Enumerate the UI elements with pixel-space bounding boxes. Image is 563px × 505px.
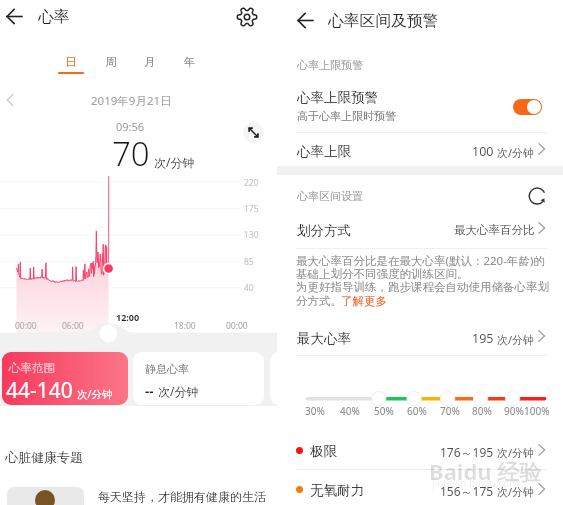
staticText: 195 — [472, 330, 494, 347]
button[interactable]: 最大心率 — [277, 325, 563, 353]
staticText: 周 — [105, 55, 117, 69]
staticText: 次/分钟 — [154, 154, 195, 170]
staticText: 130 — [244, 229, 259, 241]
button[interactable]: Reset heart rate zones — [528, 187, 547, 206]
staticText: 60% — [407, 404, 427, 418]
staticText: 100 — [472, 143, 494, 160]
staticText: 06:00 — [62, 320, 84, 332]
staticText: 30% — [305, 404, 325, 418]
button[interactable]: Expand chart — [243, 122, 264, 143]
staticText: 次/分钟 — [497, 484, 535, 499]
button[interactable]: 心率范围 — [2, 352, 128, 405]
staticText: 次/分钟 — [497, 332, 535, 347]
staticText: 50% — [374, 404, 394, 418]
staticText: 44-140 — [6, 376, 73, 405]
staticText: 心率上限 — [297, 143, 351, 160]
staticText: 18:00 — [174, 320, 196, 332]
staticText: 次/分钟 — [158, 383, 199, 399]
staticText: 90% — [504, 404, 524, 418]
staticText: 无氧耐力 — [310, 482, 364, 499]
staticText: 分方式。 — [296, 294, 342, 308]
staticText: 次/分钟 — [497, 145, 535, 160]
staticText: 心率上限预警 — [297, 58, 363, 72]
button[interactable]: 了解更多 — [341, 294, 387, 308]
staticText: 心脏健康专题 — [5, 449, 83, 465]
staticText: 静息心率 — [145, 362, 189, 376]
button[interactable]: 无氧耐力 — [277, 473, 563, 505]
button[interactable]: 心率上限预警 — [277, 84, 563, 128]
button[interactable]: Settings — [236, 6, 258, 28]
button[interactable]: 周 — [95, 52, 127, 76]
staticText: 次/分钟 — [497, 445, 535, 460]
button[interactable]: Previous day — [3, 92, 19, 108]
button[interactable]: 划分方式 — [277, 217, 563, 245]
staticText: 70% — [440, 404, 460, 418]
button[interactable]: 静息心率 — [133, 352, 264, 405]
staticText: 月 — [144, 55, 156, 69]
staticText: 基础上划分不同强度的训练区间。 — [296, 267, 469, 281]
staticText: 40% — [340, 404, 360, 418]
staticText: 为更好指导训练，跑步课程会自动使用储备心率划 — [296, 280, 549, 294]
staticText: 156～175 — [440, 483, 494, 499]
button[interactable]: Heart rate alert toggle — [513, 99, 542, 115]
staticText: 次/分钟 — [77, 387, 113, 401]
staticText: 高于心率上限时预警 — [297, 109, 396, 123]
staticText: 最大心率 — [297, 330, 351, 347]
staticText: 80% — [472, 404, 492, 418]
staticText: 心率范围 — [9, 361, 55, 375]
staticText: 100% — [524, 404, 550, 418]
staticText: 09:56 — [116, 119, 145, 134]
staticText: 176～195 — [440, 444, 494, 460]
staticText: 40 — [244, 282, 254, 294]
button[interactable]: 月 — [134, 52, 166, 76]
staticText: 心率 — [38, 7, 70, 27]
button[interactable]: 心率上限 — [277, 134, 563, 166]
button[interactable]: Back — [1, 3, 28, 30]
staticText: 心率区间设置 — [297, 189, 363, 203]
staticText: 每天坚持，才能拥有健康的生活 — [98, 489, 266, 504]
button[interactable]: 年 — [174, 52, 206, 76]
staticText: Baidu 经验 — [429, 456, 542, 486]
staticText: 70 — [112, 131, 150, 176]
staticText: jingyan.baidu.com — [432, 476, 519, 490]
staticText: 心率区间及预警 — [328, 11, 439, 31]
button[interactable]: 极限 — [277, 434, 563, 466]
button[interactable]: Back — [292, 7, 319, 34]
button[interactable]: 日 — [55, 52, 87, 76]
staticText: 00:00 — [15, 320, 37, 332]
staticText: 00:00 — [226, 320, 248, 332]
staticText: 最大心率百分比 — [454, 223, 535, 237]
button[interactable] — [7, 487, 84, 505]
staticText: 心率上限预警 — [297, 89, 378, 106]
staticText: 年 — [184, 55, 196, 69]
staticText: 极限 — [310, 443, 337, 460]
staticText: 2019年9月21日 — [91, 93, 172, 109]
staticText: 划分方式 — [297, 222, 351, 239]
staticText: 85 — [244, 256, 254, 268]
staticText: 12:00 — [116, 311, 140, 323]
staticText: 220 — [244, 177, 259, 189]
staticText: 日 — [65, 55, 77, 69]
staticText: -- — [145, 382, 154, 400]
staticText: 175 — [244, 203, 259, 215]
staticText: 最大心率百分比是在最大心率(默认：220-年龄)的 — [296, 253, 545, 269]
